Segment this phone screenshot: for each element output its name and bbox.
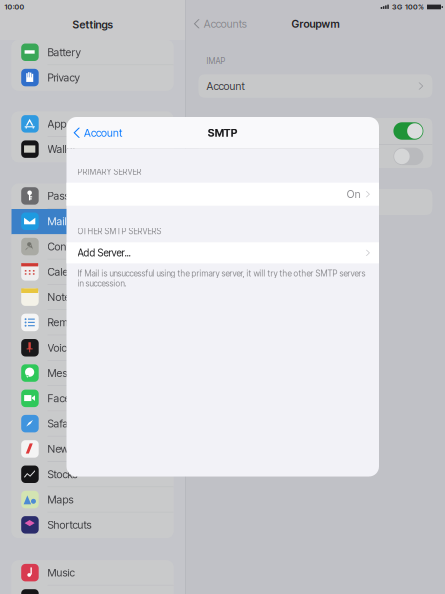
- button[interactable]: Stocks: [11, 462, 173, 487]
- button[interactable]: Mail: [11, 209, 173, 234]
- button[interactable]: Voice Memos: [11, 335, 173, 361]
- staticText: News: [47, 442, 73, 455]
- staticText: Settings: [72, 18, 112, 31]
- staticText: Music: [47, 566, 74, 579]
- staticText: Notes: [47, 291, 75, 304]
- button[interactable]: Notes: [11, 285, 173, 310]
- button[interactable]: Safari: [11, 411, 173, 437]
- staticText: PRIMARY SERVER: [77, 167, 141, 177]
- button[interactable]: On: [66, 183, 379, 206]
- staticText: Voice Memos: [47, 341, 110, 354]
- staticText: Contacts: [47, 240, 88, 253]
- button[interactable]: Battery: [11, 40, 173, 65]
- staticText: OTHER SMTP SERVERS: [77, 227, 161, 236]
- staticText: Reminders: [47, 316, 96, 329]
- staticText: SMTP: [208, 126, 238, 139]
- staticText: Maps: [47, 493, 73, 506]
- button[interactable]: Maps: [11, 487, 173, 513]
- button[interactable]: Passwords: [11, 184, 173, 209]
- staticText: IMAP: [206, 56, 225, 66]
- button[interactable]: App Store: [11, 112, 173, 137]
- button[interactable]: Shortcuts: [11, 513, 173, 538]
- staticText: App Store: [47, 117, 93, 130]
- button[interactable]: Account: [66, 121, 122, 144]
- button[interactable]: Accounts: [186, 14, 247, 33]
- button[interactable]: Privacy: [11, 65, 173, 91]
- staticText: Privacy: [47, 71, 79, 84]
- button[interactable]: Music: [11, 560, 173, 586]
- staticText: If Mail is unsuccessful using the primar…: [77, 268, 365, 288]
- staticText: Battery: [47, 46, 80, 59]
- staticText: Safari: [47, 417, 73, 430]
- button[interactable]: Add Server...: [66, 242, 379, 263]
- button[interactable]: Calendar: [11, 260, 173, 285]
- staticText: Accounts: [204, 17, 247, 30]
- button[interactable]: Reminders: [11, 310, 173, 335]
- button[interactable]: Enabled: [393, 122, 423, 140]
- button[interactable]: Contacts: [11, 234, 173, 260]
- staticText: Account: [84, 126, 122, 139]
- staticText: Calendar: [47, 265, 89, 278]
- staticText: Groupwm: [291, 17, 339, 30]
- staticText: Add Server...: [77, 247, 130, 259]
- staticText: FaceTime: [47, 392, 92, 405]
- button[interactable]: FaceTime: [11, 386, 173, 411]
- staticText: Account: [206, 80, 244, 92]
- staticText: Shortcuts: [47, 518, 91, 531]
- button[interactable]: News: [11, 437, 173, 462]
- staticText: Mail: [47, 215, 66, 228]
- staticText: Wallet: [47, 143, 75, 156]
- staticText: On: [347, 188, 361, 201]
- staticText: 100%: [405, 2, 424, 11]
- staticText: Passwords: [47, 189, 97, 202]
- button[interactable]: Wallet: [11, 137, 173, 162]
- staticText: 10:00: [4, 2, 24, 11]
- staticText: Stocks: [47, 468, 77, 481]
- button[interactable]: Messages: [11, 361, 173, 386]
- button[interactable]: TV: [11, 586, 173, 594]
- staticText: 3G: [392, 2, 402, 11]
- button[interactable]: Account: [198, 74, 432, 98]
- staticText: Messages: [47, 367, 95, 379]
- button[interactable]: Disabled: [393, 148, 423, 165]
